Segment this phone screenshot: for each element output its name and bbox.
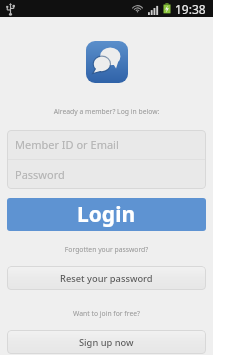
- other: USB connected: [6, 3, 15, 15]
- staticText: Reset your password: [60, 272, 153, 285]
- staticText: Member ID or Email: [15, 137, 119, 152]
- button[interactable]: Password: [7, 160, 206, 189]
- button[interactable]: Reset your password: [7, 266, 206, 290]
- button[interactable]: Member ID or Email: [7, 130, 206, 159]
- staticText: Already a member? Log in below:: [0, 107, 213, 116]
- staticText: Forgotten your password?: [7, 245, 206, 254]
- staticText: Sign up now: [79, 336, 134, 349]
- button[interactable]: Login: [7, 198, 206, 231]
- button[interactable]: Sign up now: [7, 330, 206, 354]
- staticText: Login: [77, 200, 136, 229]
- other: App logo: [86, 41, 128, 83]
- staticText: Want to join for free?: [7, 309, 206, 318]
- staticText: 19:38: [175, 1, 206, 17]
- staticText: Password: [15, 167, 65, 182]
